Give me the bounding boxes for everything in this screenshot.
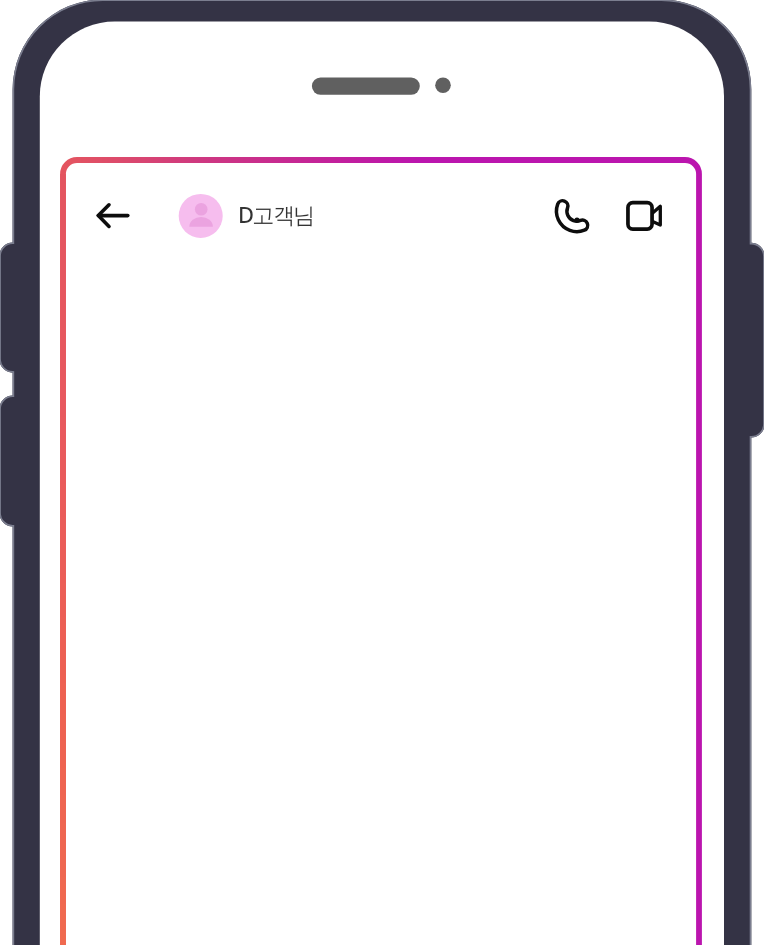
- button[interactable]: D고객님: [178, 192, 300, 238]
- button[interactable]: Back: [88, 192, 134, 238]
- staticText: D고객님: [238, 199, 314, 229]
- button[interactable]: Video call: [620, 194, 668, 242]
- button[interactable]: Call: [550, 194, 594, 238]
